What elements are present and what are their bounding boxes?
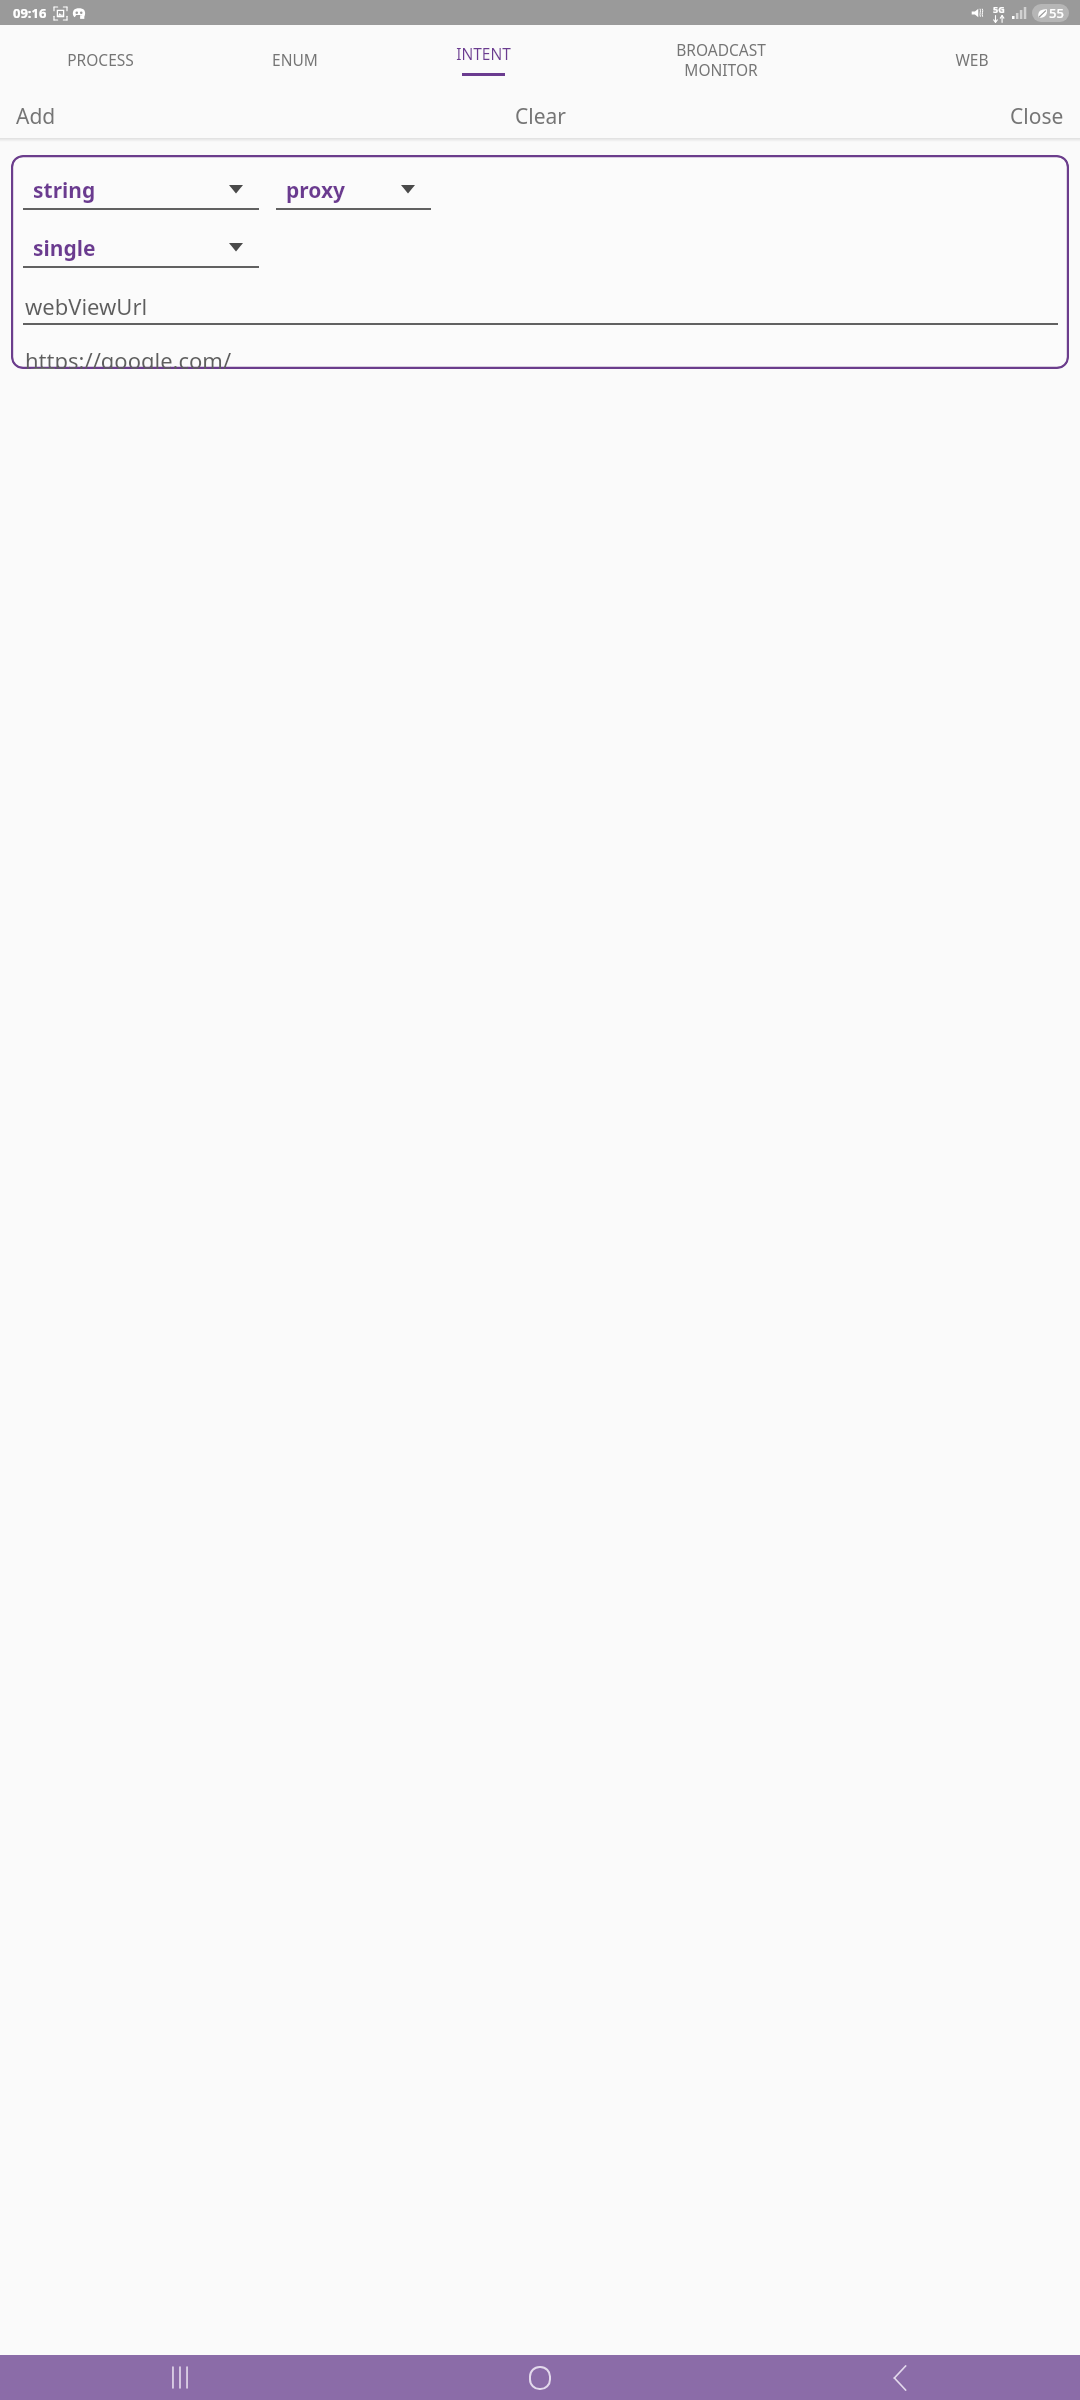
button[interactable]: BROADCAST MONITOR [578, 25, 864, 94]
staticText: 55 [1049, 4, 1064, 22]
staticText: https://google.com/ [25, 345, 232, 369]
staticText: Clear [515, 102, 566, 131]
staticText: Add [16, 102, 56, 131]
staticText: 09:16 [13, 4, 47, 22]
button[interactable]: Close [720, 94, 1080, 138]
button[interactable]: Home [360, 2355, 720, 2400]
button[interactable]: ENUM [200, 25, 389, 94]
staticText: INTENT [456, 43, 511, 64]
staticText: BROADCAST MONITOR [676, 39, 766, 80]
button[interactable]: INTENT [389, 25, 578, 94]
button[interactable]: Recent apps [0, 2355, 360, 2400]
staticText: webViewUrl [25, 291, 148, 321]
staticText: string [33, 176, 96, 205]
staticText: WEB [955, 49, 989, 70]
staticText: proxy [286, 176, 346, 205]
button[interactable]: PROCESS [0, 25, 200, 94]
staticText: single [33, 234, 96, 263]
button[interactable]: https://google.com/ [23, 345, 1058, 369]
button[interactable]: webViewUrl [23, 289, 1058, 325]
staticText: 5G [993, 3, 1005, 15]
button[interactable]: Back [720, 2355, 1080, 2400]
staticText: PROCESS [67, 49, 134, 70]
button[interactable]: WEB [864, 25, 1080, 94]
button[interactable]: Clear [360, 94, 720, 138]
button[interactable]: proxy [276, 172, 431, 210]
button[interactable]: Add [0, 94, 360, 138]
staticText: ENUM [272, 49, 318, 70]
button[interactable]: string [23, 172, 259, 210]
button[interactable]: single [23, 230, 259, 268]
staticText: Close [1010, 102, 1064, 131]
